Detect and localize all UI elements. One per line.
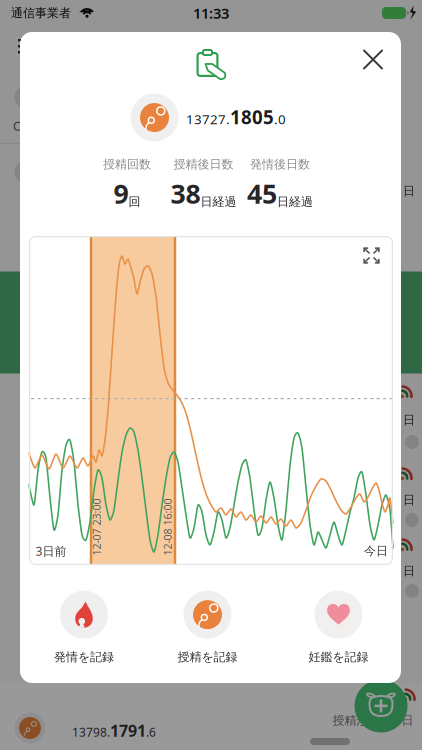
- staticText: C: [13, 118, 21, 134]
- staticText: 3日前: [35, 543, 66, 559]
- staticText: 12-07 23:00: [68, 520, 125, 534]
- staticText: 授精後日数: [173, 157, 233, 172]
- button[interactable]: 閉じる: [351, 37, 395, 81]
- button[interactable]: グラフを拡大: [357, 241, 385, 269]
- staticText: 妊鑑を記録: [308, 650, 368, 664]
- button[interactable]: 牛を追加: [354, 679, 407, 732]
- staticText: 日: [403, 184, 415, 198]
- staticText: 11:33: [193, 3, 229, 23]
- button[interactable]: 妊鑑を記録: [308, 591, 368, 664]
- staticText: 通信事業者: [11, 6, 71, 20]
- staticText: 授精回数: [103, 157, 151, 172]
- staticText: 日: [403, 564, 415, 578]
- staticText: 発情を記録: [54, 650, 114, 664]
- button[interactable]: 発情を記録: [54, 591, 114, 664]
- staticText: 9回: [113, 176, 140, 211]
- staticText: 45日経過: [247, 176, 313, 211]
- staticText: 38日経過: [170, 176, 236, 211]
- staticText: 授精から328日: [332, 712, 413, 728]
- button[interactable]: 授精を記録: [177, 591, 237, 664]
- staticText: 日: [403, 493, 415, 507]
- staticText: 今日: [364, 544, 388, 558]
- staticText: 13798.1791.6: [72, 720, 156, 741]
- staticText: 日: [403, 413, 415, 427]
- staticText: 発情後日数: [250, 157, 310, 172]
- staticText: 13727.1805.0: [186, 105, 286, 129]
- staticText: 12-08 16:00: [139, 520, 196, 534]
- staticText: 授精を記録: [177, 650, 237, 664]
